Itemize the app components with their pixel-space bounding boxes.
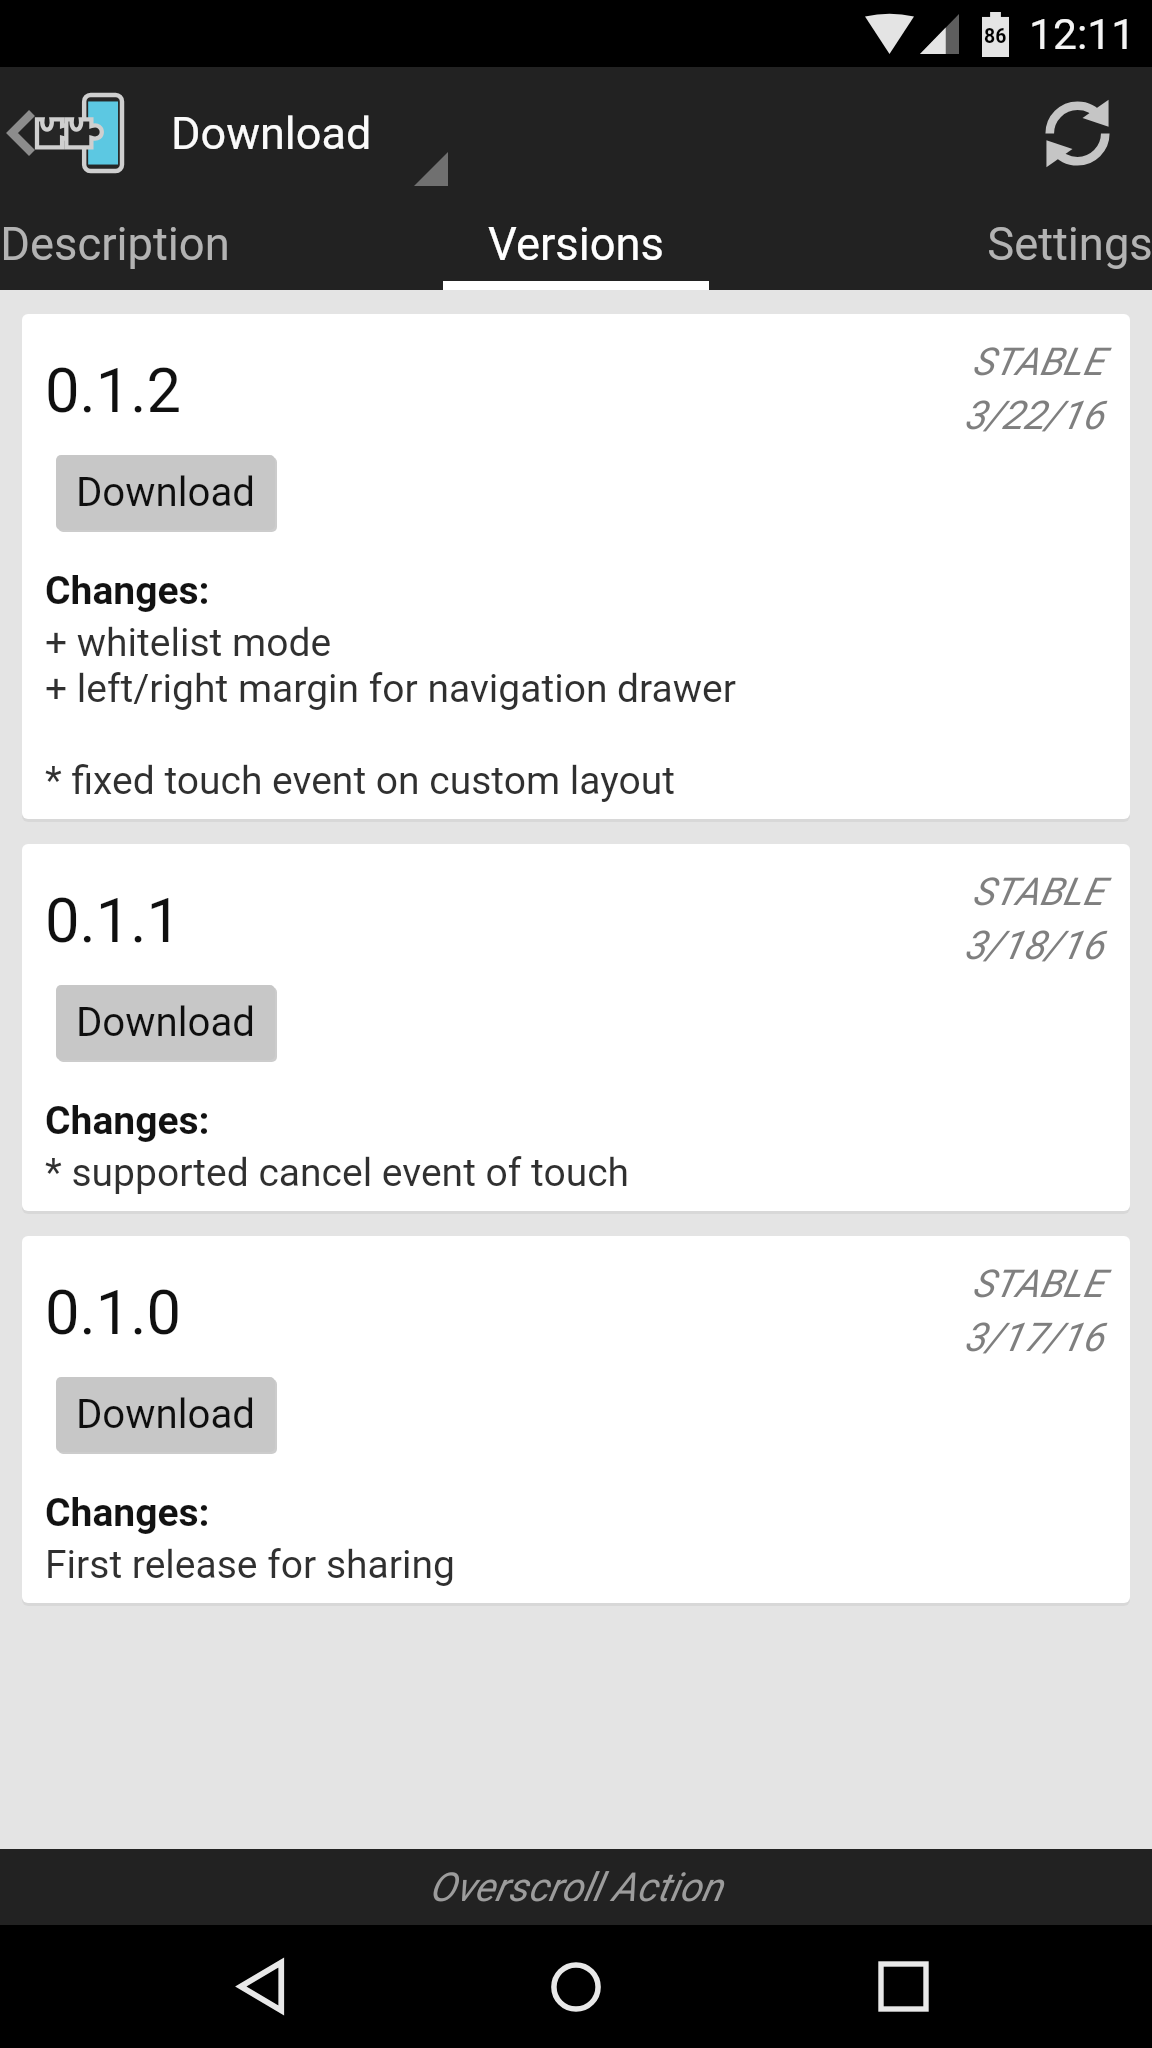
staticText: 86 — [984, 25, 1007, 48]
button[interactable]: Download — [56, 455, 275, 530]
staticText: * fixed touch event on custom layout — [45, 758, 675, 804]
staticText: 3/18/16 — [964, 922, 1104, 968]
staticText: Download — [76, 469, 255, 516]
staticText: Description — [0, 218, 230, 271]
staticText: + left/right margin for navigation drawe… — [45, 666, 736, 712]
button[interactable]: Back — [171, 1925, 351, 2048]
other: Navigate up — [12, 113, 32, 153]
button[interactable]: Recent apps — [813, 1925, 993, 2048]
staticText: Settings — [987, 218, 1152, 271]
button[interactable]: Refresh — [1002, 67, 1152, 199]
staticText: STABLE — [972, 339, 1104, 384]
button[interactable]: Versions — [443, 199, 709, 290]
button[interactable]: Overscroll Action — [0, 1849, 1152, 1925]
staticText: 3/22/16 — [964, 392, 1104, 438]
staticText: Changes: — [45, 568, 210, 614]
staticText: + whitelist mode — [45, 620, 332, 666]
staticText: 0.1.2 — [45, 355, 182, 427]
staticText: Download — [171, 107, 372, 160]
staticText: First release for sharing — [45, 1542, 455, 1588]
staticText: Changes: — [45, 1490, 210, 1536]
button[interactable]: Download — [56, 985, 275, 1060]
button[interactable]: Navigate up — [0, 67, 390, 199]
staticText: Versions — [488, 218, 664, 271]
staticText: 0.1.0 — [45, 1277, 182, 1349]
staticText: Download — [76, 999, 255, 1046]
button[interactable]: Download — [56, 1377, 275, 1452]
staticText: * supported cancel event of touch — [45, 1150, 630, 1196]
staticText: 12:11 — [1029, 9, 1136, 59]
staticText: STABLE — [972, 1261, 1104, 1306]
button[interactable]: Settings — [937, 199, 1152, 290]
button[interactable]: 0.1.0 — [22, 1236, 1130, 1603]
button[interactable]: 0.1.1 — [22, 844, 1130, 1211]
button[interactable]: Description — [0, 199, 248, 290]
staticText: 0.1.1 — [45, 885, 182, 957]
staticText: 3/17/16 — [964, 1314, 1104, 1360]
staticText: Changes: — [45, 1098, 210, 1144]
staticText: STABLE — [972, 869, 1104, 914]
staticText: Overscroll Action — [429, 1864, 723, 1911]
button[interactable]: 0.1.2 — [22, 314, 1130, 819]
staticText: Download — [76, 1391, 255, 1438]
button[interactable]: Home — [486, 1925, 666, 2048]
